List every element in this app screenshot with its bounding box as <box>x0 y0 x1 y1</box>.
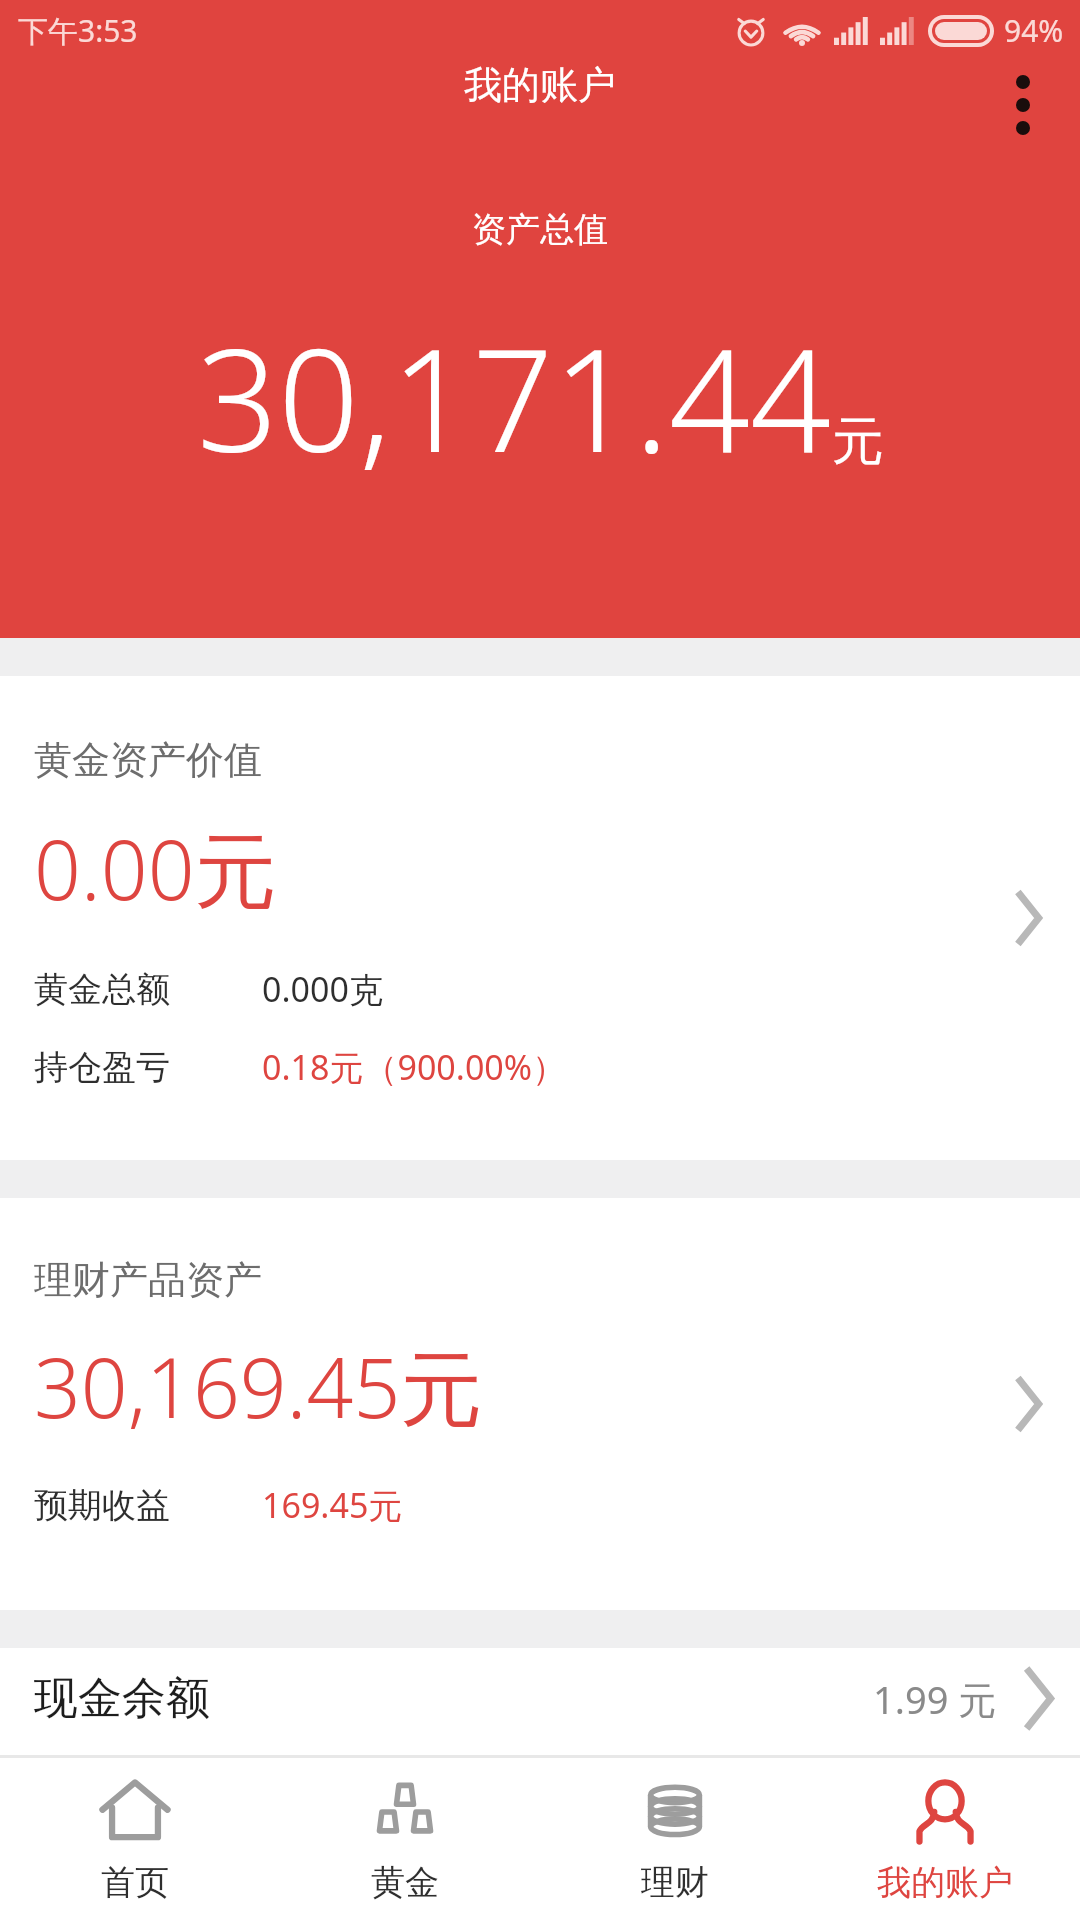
staticText: 94% <box>1004 10 1064 51</box>
button[interactable]: 现金余额 <box>0 1648 1080 1748</box>
staticText: 首页 <box>101 1861 169 1904</box>
staticText: 0.00元 <box>34 812 277 924</box>
staticText: 资产总值 <box>472 208 608 251</box>
staticText: 黄金总额 <box>34 968 170 1011</box>
staticText: 元 <box>832 409 884 475</box>
button[interactable]: 理财产品资产 <box>0 1198 1080 1610</box>
staticText: 30,171.44 <box>197 300 832 493</box>
button[interactable]: Gold <box>270 1758 540 1920</box>
staticText: 现金余额 <box>34 1671 210 1726</box>
staticText: 0.000克 <box>262 966 383 1012</box>
staticText: 我的账户 <box>464 61 616 109</box>
staticText: 0.18元（900.00%） <box>262 1044 567 1090</box>
button[interactable]: More options <box>988 70 1058 140</box>
staticText: 169.45元 <box>262 1482 403 1528</box>
staticText: 1.99 元 <box>873 1673 997 1725</box>
staticText: 预期收益 <box>34 1484 170 1527</box>
staticText: 30,169.45元 <box>34 1330 483 1442</box>
staticText: 我的账户 <box>877 1861 1013 1904</box>
button[interactable]: 黄金资产价值 <box>0 676 1080 1160</box>
staticText: 理财产品资产 <box>34 1256 262 1304</box>
button[interactable]: My account <box>810 1758 1080 1920</box>
staticText: 黄金 <box>371 1861 439 1904</box>
staticText: 黄金资产价值 <box>34 736 262 784</box>
button[interactable]: Wealth <box>540 1758 810 1920</box>
staticText: 持仓盈亏 <box>34 1046 170 1089</box>
staticText: 下午3:53 <box>18 10 138 51</box>
button[interactable]: Home <box>0 1758 270 1920</box>
staticText: 理财 <box>641 1861 709 1904</box>
